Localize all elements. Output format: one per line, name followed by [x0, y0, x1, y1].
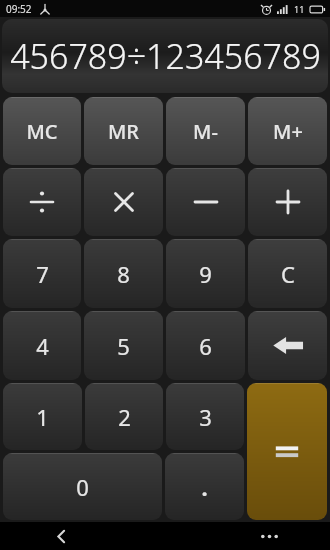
- button[interactable]: 5: [84, 311, 163, 380]
- button[interactable]: .: [165, 453, 244, 520]
- staticText: 5: [117, 331, 130, 361]
- staticText: 1: [36, 402, 49, 432]
- button[interactable]: Back: [48, 523, 74, 549]
- staticText: 11: [294, 3, 305, 15]
- button[interactable]: 1: [3, 383, 82, 450]
- staticText: 7: [36, 259, 49, 289]
- button[interactable]: 9: [166, 239, 245, 308]
- button[interactable]: M-: [166, 97, 245, 165]
- button[interactable]: Multiply: [84, 168, 163, 236]
- staticText: 3: [199, 402, 212, 432]
- staticText: C: [281, 259, 295, 289]
- staticText: M-: [193, 118, 218, 145]
- button[interactable]: 2: [85, 383, 163, 450]
- staticText: 456789÷123456789: [10, 33, 321, 79]
- button[interactable]: 7: [3, 239, 81, 308]
- staticText: 8: [117, 259, 130, 289]
- button[interactable]: 4: [3, 311, 81, 380]
- staticText: 9: [199, 259, 212, 289]
- button[interactable]: Equals: [247, 383, 327, 520]
- button[interactable]: C: [248, 239, 327, 308]
- staticText: 2: [118, 402, 131, 432]
- button[interactable]: 6: [166, 311, 245, 380]
- button[interactable]: Divide: [3, 168, 81, 236]
- staticText: 4: [36, 331, 49, 361]
- button[interactable]: 8: [84, 239, 163, 308]
- button[interactable]: Backspace: [248, 311, 327, 380]
- button[interactable]: MR: [84, 97, 163, 165]
- staticText: .: [201, 472, 208, 502]
- staticText: 0: [76, 472, 89, 502]
- staticText: MC: [26, 118, 58, 145]
- button[interactable]: Menu: [256, 523, 282, 549]
- button[interactable]: 0: [3, 453, 162, 520]
- button[interactable]: 3: [166, 383, 244, 450]
- button[interactable]: Plus: [248, 168, 327, 236]
- staticText: M+: [273, 118, 303, 145]
- staticText: 09:52: [6, 2, 32, 16]
- button[interactable]: MC: [3, 97, 81, 165]
- staticText: MR: [108, 118, 139, 145]
- staticText: 6: [199, 331, 212, 361]
- button[interactable]: M+: [248, 97, 327, 165]
- button[interactable]: Minus: [166, 168, 245, 236]
